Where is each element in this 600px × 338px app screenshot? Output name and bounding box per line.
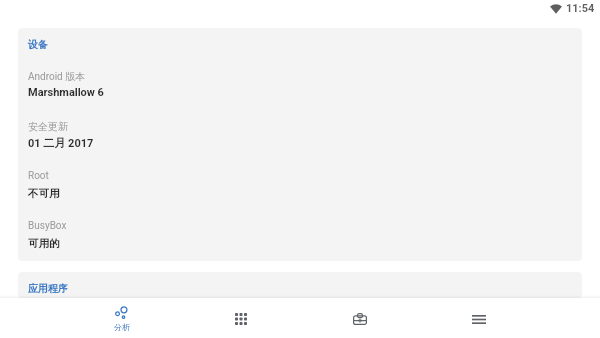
staticText: Root (28, 170, 49, 182)
staticText: 安全更新 (28, 120, 68, 133)
staticText: 不可用 (28, 187, 60, 200)
button[interactable]: 设备 (18, 28, 582, 261)
staticText: 分析 (114, 322, 130, 332)
staticText: 01 二月 2017 (28, 136, 94, 150)
staticText: 应用程序 (28, 282, 68, 295)
staticText: Android 版本 (28, 70, 86, 83)
button[interactable]: Menu (419, 298, 538, 338)
staticText: BusyBox (28, 220, 67, 232)
button[interactable]: 应用程序 (18, 272, 582, 298)
button[interactable]: Work (300, 298, 419, 338)
button[interactable]: Analysis (62, 298, 181, 338)
staticText: 可用的 (28, 237, 60, 250)
staticText: 11:54 (566, 2, 595, 15)
staticText: Marshmallow 6 (28, 86, 104, 99)
staticText: 设备 (28, 38, 48, 51)
button[interactable]: Apps (181, 298, 300, 338)
